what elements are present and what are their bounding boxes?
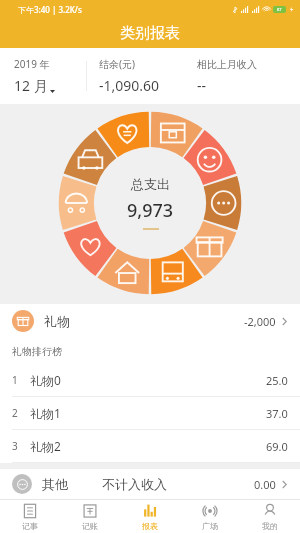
staticText: 其他 [42,476,68,492]
staticText: 相比上月收入 [197,58,257,71]
staticText: 记账 [82,521,98,531]
staticText: 12 月 [14,76,48,95]
staticText: 类别报表 [120,24,180,43]
staticText: -1,090.60 [99,76,160,95]
button[interactable]: 广场 [180,500,240,533]
staticText: 2019 年 [14,57,50,71]
staticText: 礼物 [44,313,70,329]
staticText: 9,973 [127,198,174,223]
staticText: 报表 [142,521,158,531]
staticText: 我的 [262,521,278,531]
staticText: 69.0 [266,439,288,454]
staticText: 37.0 [266,406,288,421]
staticText: 礼物排行榜 [12,345,62,358]
staticText: 25.0 [266,373,288,388]
button[interactable]: 2 [0,397,300,429]
staticText: -2,000 [244,314,276,329]
button[interactable]: 礼物 [0,304,300,338]
button[interactable]: 其他 [0,469,300,499]
staticText: 总支出 [131,176,170,192]
staticText: 3 [12,439,18,453]
staticText: 礼物0 [30,372,61,388]
staticText: -- [197,76,207,95]
button[interactable]: 报表 [120,500,180,533]
button[interactable]: 记账 [60,500,120,533]
staticText: 记事 [22,521,38,531]
button[interactable]: 我的 [240,500,300,533]
button[interactable]: 记事 [0,500,60,533]
button[interactable]: 3 [0,430,300,462]
staticText: 87 [277,7,282,12]
staticText: 0.00 [254,477,276,492]
staticText: 礼物1 [30,405,61,421]
staticText: 广场 [202,521,218,531]
staticText: 结余(元) [99,57,135,71]
staticText: 礼物2 [30,438,61,454]
staticText: 下午3:40 | 3.2K/s [18,4,82,15]
button[interactable]: 1 [0,364,300,396]
button[interactable]: 2019 年 [0,57,86,95]
staticText: 不计入收入 [102,476,167,492]
staticText: 2 [12,406,18,420]
staticText: 1 [12,373,18,387]
